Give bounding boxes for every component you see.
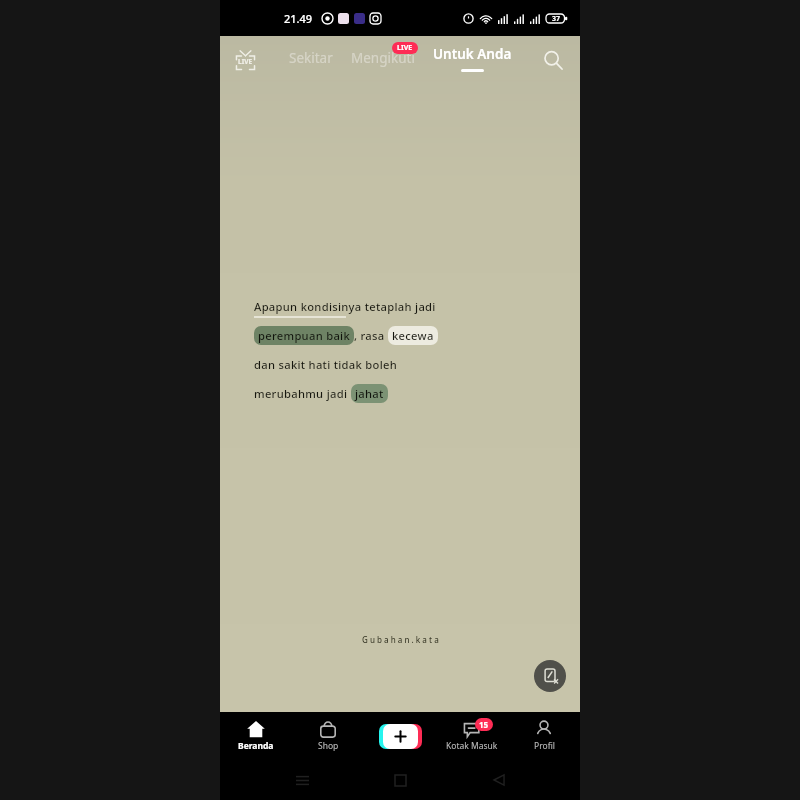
- staticText: Sekitar: [289, 49, 333, 67]
- button[interactable]: Recents: [285, 763, 319, 797]
- staticText: 21.49: [284, 11, 313, 26]
- staticText: Kotak Masuk: [446, 740, 498, 752]
- staticText: G u b a h a n . k a t a: [362, 634, 439, 645]
- button[interactable]: Search: [538, 45, 568, 75]
- button[interactable]: Shop: [292, 712, 364, 760]
- staticText: 37: [552, 14, 561, 24]
- button[interactable]: Create: [379, 723, 421, 750]
- button[interactable]: Kotak Masuk: [436, 712, 508, 760]
- staticText: LIVE: [238, 57, 253, 66]
- button[interactable]: Untuk Anda: [424, 45, 521, 72]
- staticText: merubahmu jadi: [254, 386, 351, 401]
- staticText: 15: [479, 719, 489, 730]
- staticText: Apapun kondisinya tetaplah jadi: [254, 299, 436, 314]
- button[interactable]: Mengikuti: [342, 42, 424, 74]
- staticText: Untuk Anda: [433, 45, 512, 63]
- staticText: , rasa: [354, 328, 388, 343]
- staticText: perempuan baik: [258, 328, 350, 343]
- staticText: jahat: [355, 386, 384, 401]
- button[interactable]: Home: [383, 763, 417, 797]
- button[interactable]: Beranda: [220, 712, 292, 760]
- button[interactable]: LIVE: [230, 45, 260, 75]
- button[interactable]: Use this template: [534, 660, 566, 692]
- staticText: kecewa: [392, 328, 434, 343]
- staticText: Shop: [318, 740, 339, 752]
- button[interactable]: Back: [482, 763, 516, 797]
- button[interactable]: Sekitar: [280, 42, 342, 74]
- button[interactable]: Profil: [508, 712, 580, 760]
- staticText: Beranda: [238, 740, 274, 752]
- staticText: LIVE: [397, 43, 413, 53]
- staticText: Profil: [534, 740, 555, 752]
- staticText: Mengikuti: [351, 49, 415, 67]
- staticText: dan sakit hati tidak boleh: [254, 357, 398, 372]
